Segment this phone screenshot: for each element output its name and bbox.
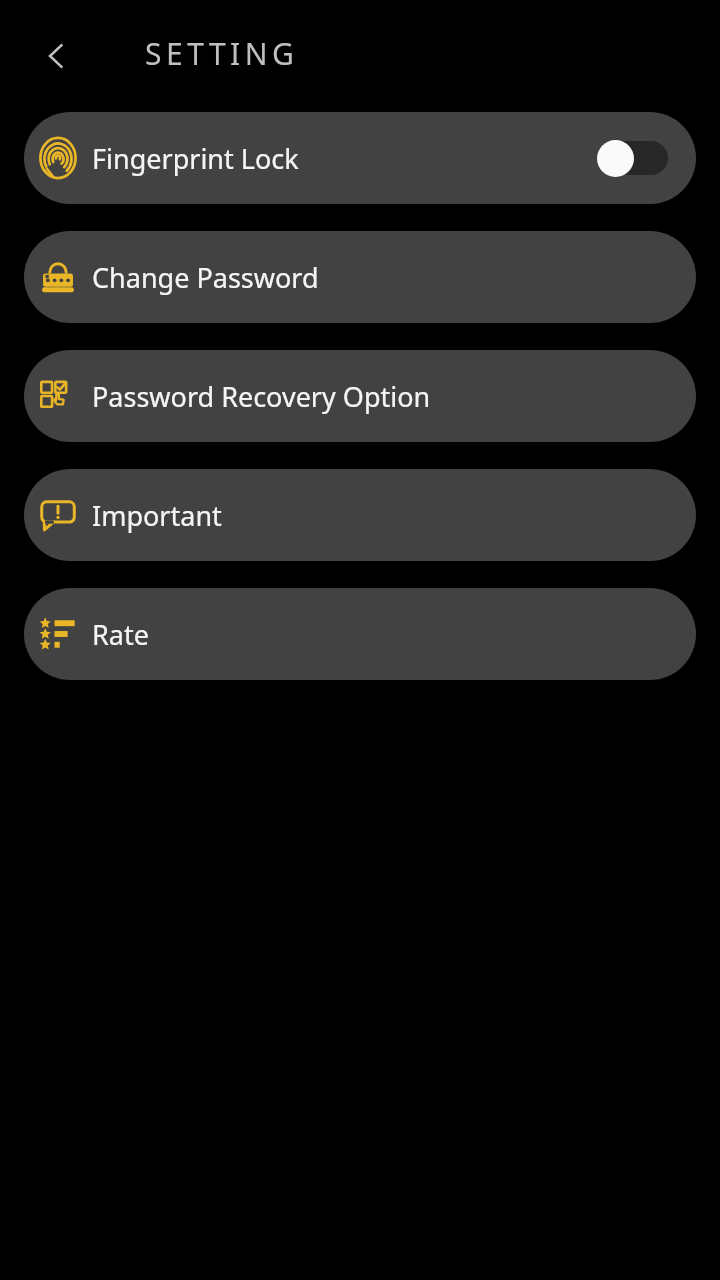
staticText: Password Recovery Option xyxy=(92,378,431,415)
staticText: Rate xyxy=(92,616,149,653)
staticText: Change Password xyxy=(92,259,319,296)
staticText: SETTING xyxy=(145,33,299,74)
button[interactable]: Password Recovery Option xyxy=(24,350,696,442)
button[interactable]: Fingerprint Lock toggle xyxy=(597,139,669,177)
staticText: Fingerprint Lock xyxy=(92,140,299,177)
button[interactable]: Change Password xyxy=(24,231,696,323)
button[interactable]: Rate xyxy=(24,588,696,680)
staticText: Important xyxy=(92,497,222,534)
button[interactable]: Fingerprint Lock xyxy=(24,112,696,204)
button[interactable]: Back xyxy=(30,30,82,82)
button[interactable]: Important xyxy=(24,469,696,561)
